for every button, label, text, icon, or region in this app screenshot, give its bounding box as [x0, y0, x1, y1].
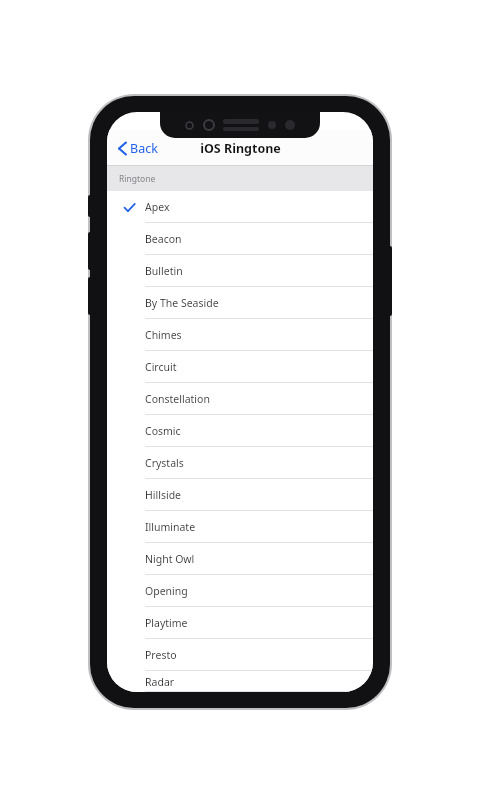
- staticText: Beacon: [145, 232, 182, 246]
- staticText: Crystals: [145, 456, 184, 470]
- staticText: Constellation: [145, 392, 210, 406]
- staticText: Circuit: [145, 360, 177, 374]
- staticText: Cosmic: [145, 424, 181, 438]
- button[interactable]: Radar: [107, 671, 373, 692]
- button[interactable]: Crystals: [107, 447, 373, 479]
- staticText: Bulletin: [145, 264, 183, 278]
- staticText: Apex: [145, 200, 170, 214]
- button[interactable]: Bulletin: [107, 255, 373, 287]
- staticText: Presto: [145, 648, 177, 662]
- button[interactable]: Chimes: [107, 319, 373, 351]
- staticText: Playtime: [145, 616, 188, 630]
- button[interactable]: Constellation: [107, 383, 373, 415]
- staticText: Opening: [145, 584, 188, 598]
- staticText: Night Owl: [145, 552, 195, 566]
- button[interactable]: Cosmic: [107, 415, 373, 447]
- button[interactable]: Presto: [107, 639, 373, 671]
- button[interactable]: Hillside: [107, 479, 373, 511]
- staticText: Radar: [145, 675, 175, 689]
- staticText: Ringtone: [119, 173, 156, 185]
- staticText: By The Seaside: [145, 296, 219, 310]
- button[interactable]: Circuit: [107, 351, 373, 383]
- button[interactable]: By The Seaside: [107, 287, 373, 319]
- staticText: Hillside: [145, 488, 182, 502]
- staticText: Chimes: [145, 328, 182, 342]
- button[interactable]: Opening: [107, 575, 373, 607]
- staticText: Back: [130, 140, 158, 157]
- button[interactable]: Night Owl: [107, 543, 373, 575]
- staticText: Illuminate: [145, 520, 196, 534]
- button[interactable]: Illuminate: [107, 511, 373, 543]
- button[interactable]: Apex: [107, 191, 373, 223]
- staticText: iOS Ringtone: [200, 140, 281, 157]
- button[interactable]: Back: [114, 136, 162, 161]
- button[interactable]: Beacon: [107, 223, 373, 255]
- button[interactable]: Playtime: [107, 607, 373, 639]
